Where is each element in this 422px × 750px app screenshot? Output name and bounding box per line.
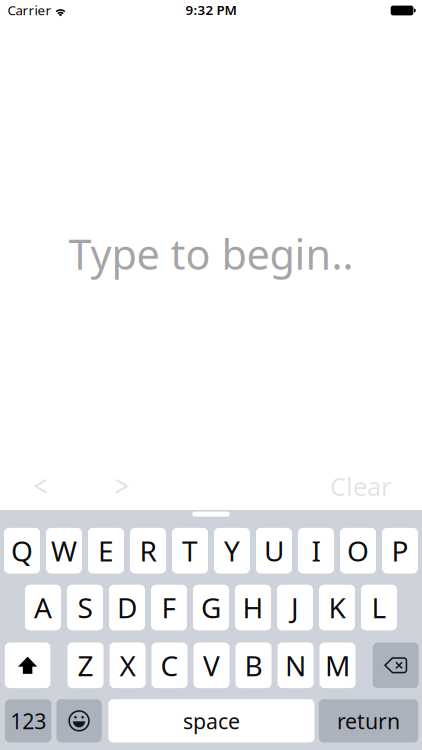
staticText: I [311,532,320,569]
button[interactable]: I [298,528,334,573]
staticText: Carrier [7,1,51,19]
staticText: L [371,589,386,626]
button[interactable]: Delete [373,642,419,688]
button[interactable]: C [151,642,187,688]
button[interactable]: Emoji [56,699,102,742]
staticText: Z [77,647,93,684]
button[interactable]: 123 [5,699,51,742]
button[interactable]: Clear [330,461,422,511]
button[interactable]: A [25,585,61,630]
button[interactable]: Next field [82,461,161,511]
button[interactable]: F [151,585,187,630]
button[interactable]: G [193,585,229,630]
button[interactable]: B [235,642,271,688]
button[interactable]: Z [67,642,103,688]
staticText: D [117,589,137,626]
staticText: S [77,589,92,626]
staticText: 9:32 PM [185,1,236,19]
staticText: C [160,647,178,684]
button[interactable]: X [109,642,145,688]
staticText: Y [224,532,240,569]
button[interactable]: H [235,585,271,630]
staticText: K [328,589,345,626]
staticText: F [161,589,176,626]
button[interactable]: E [88,528,124,573]
staticText: J [291,589,299,626]
staticText: X [119,647,135,684]
button[interactable]: J [277,585,313,630]
staticText: A [34,589,52,626]
staticText: E [98,532,114,569]
button[interactable]: N [277,642,313,688]
button[interactable]: Previous field [0,461,82,511]
button[interactable]: W [46,528,82,573]
staticText: P [391,532,408,569]
staticText: N [285,647,306,684]
staticText: space [183,707,240,735]
button[interactable]: S [67,585,103,630]
staticText: U [264,532,284,569]
staticText: T [182,532,198,569]
staticText: G [201,589,221,626]
staticText: R [139,532,156,569]
button[interactable]: V [193,642,229,688]
staticText: Q [11,532,33,569]
button[interactable]: U [256,528,292,573]
staticText: H [242,589,263,626]
button[interactable]: space [108,699,314,742]
button[interactable]: T [172,528,208,573]
button[interactable]: Y [214,528,250,573]
button[interactable]: O [340,528,376,573]
button[interactable]: D [109,585,145,630]
staticText: O [347,532,369,569]
button[interactable]: M [319,642,355,688]
staticText: return [337,707,400,735]
button[interactable]: return [319,699,418,742]
staticText: Clear [330,469,391,503]
button[interactable]: Shift [5,642,50,688]
staticText: W [51,532,77,569]
button[interactable]: R [130,528,166,573]
staticText: B [244,647,262,684]
button[interactable]: K [319,585,355,630]
button[interactable]: L [361,585,397,630]
staticText: V [203,647,220,684]
button[interactable]: P [382,528,418,573]
button[interactable]: Q [4,528,40,573]
staticText: M [325,647,350,684]
staticText: 123 [10,707,46,735]
staticText: Type to begin.. [68,226,353,281]
